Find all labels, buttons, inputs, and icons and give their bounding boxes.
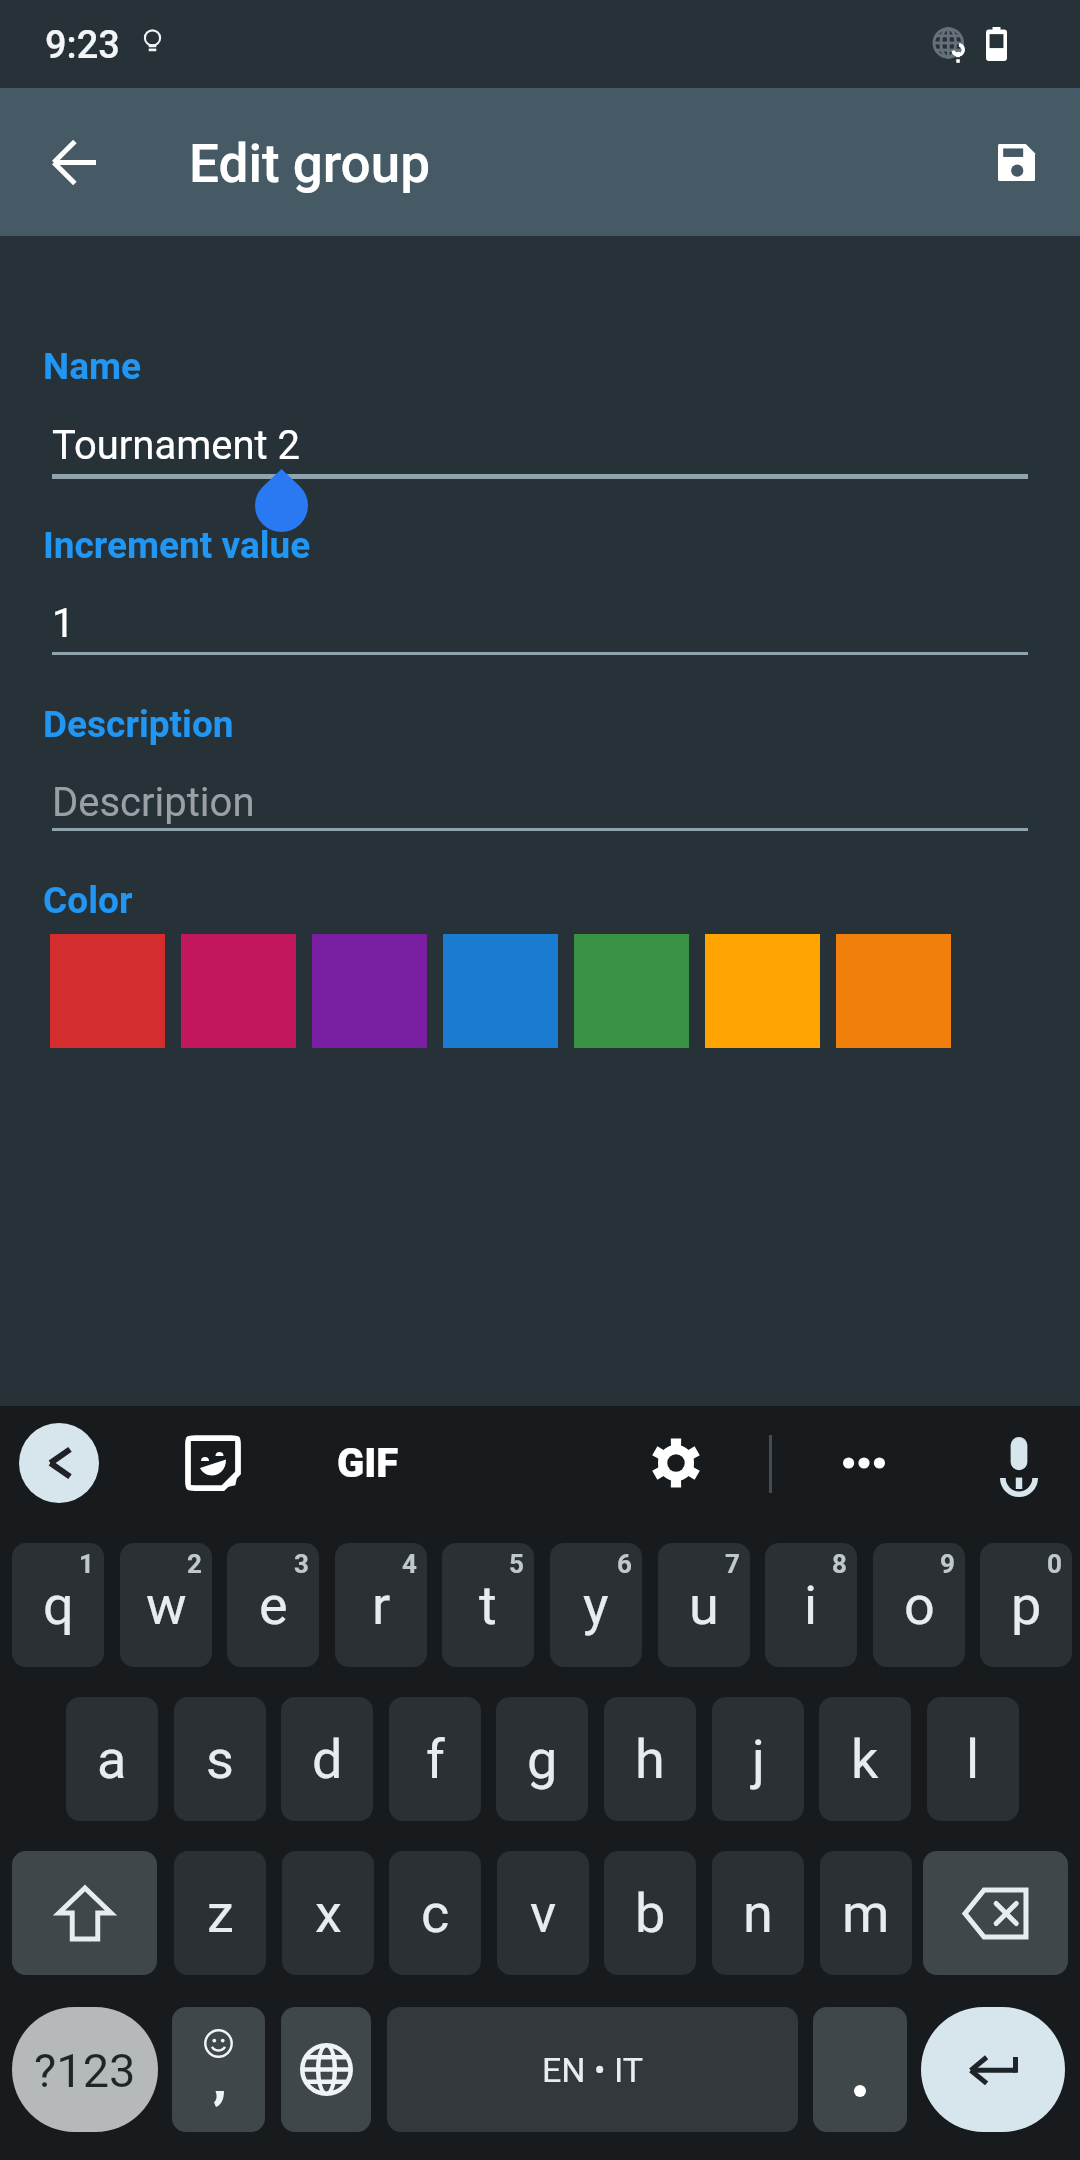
button[interactable]: EN • IT — [387, 2007, 798, 2132]
button[interactable]: Emoji and comma — [172, 2007, 265, 2132]
button[interactable]: v — [497, 1851, 589, 1975]
staticText: 8 — [832, 1549, 847, 1579]
staticText: 2 — [187, 1549, 202, 1579]
staticText: r — [372, 1574, 391, 1637]
button[interactable]: a — [66, 1697, 158, 1821]
button[interactable]: Enter — [921, 2007, 1065, 2132]
staticText: 6 — [617, 1549, 632, 1579]
staticText: y — [583, 1574, 609, 1637]
button[interactable]: Hide toolbar — [19, 1423, 99, 1503]
staticText: l — [966, 1728, 980, 1791]
staticText: j — [752, 1728, 765, 1791]
button[interactable]: q — [12, 1543, 104, 1667]
staticText: ?123 — [34, 2043, 136, 2098]
staticText: v — [530, 1882, 557, 1945]
staticText: b — [635, 1882, 666, 1945]
staticText: Tournament 2 — [52, 422, 301, 469]
button[interactable]: g — [496, 1697, 588, 1821]
staticText: 4 — [402, 1549, 417, 1579]
staticText: 0 — [1047, 1549, 1062, 1579]
staticText: Name — [43, 345, 142, 388]
button[interactable]: x — [282, 1851, 374, 1975]
button[interactable]: Switch language — [281, 2007, 371, 2132]
button[interactable]: w — [120, 1543, 212, 1667]
staticText: p — [1011, 1574, 1042, 1637]
staticText: a — [97, 1728, 127, 1791]
staticText: i — [804, 1574, 818, 1637]
staticText: t — [479, 1574, 497, 1637]
button[interactable]: l — [927, 1697, 1019, 1821]
button[interactable]: c — [389, 1851, 481, 1975]
button[interactable]: n — [712, 1851, 804, 1975]
button[interactable]: Period — [813, 2007, 907, 2132]
staticText: Edit group — [189, 133, 431, 195]
staticText: n — [743, 1882, 773, 1945]
button[interactable]: j — [712, 1697, 804, 1821]
button[interactable]: e — [227, 1543, 319, 1667]
button[interactable]: Back — [26, 88, 122, 236]
staticText: o — [904, 1574, 935, 1637]
button[interactable]: k — [819, 1697, 911, 1821]
button[interactable]: r — [335, 1543, 427, 1667]
staticText: q — [43, 1574, 74, 1637]
staticText: EN • IT — [542, 2050, 643, 2090]
button[interactable]: o — [873, 1543, 965, 1667]
staticText: Color — [43, 879, 133, 922]
button[interactable]: d — [281, 1697, 373, 1821]
staticText: 9 — [940, 1549, 955, 1579]
button[interactable]: ?123 — [12, 2007, 158, 2132]
button[interactable]: i — [765, 1543, 857, 1667]
staticText: Description — [52, 779, 255, 826]
staticText: z — [207, 1882, 234, 1945]
staticText: 1 — [52, 600, 75, 647]
staticText: d — [312, 1728, 343, 1791]
button[interactable]: GIF — [320, 1430, 416, 1496]
button[interactable]: p — [980, 1543, 1072, 1667]
button[interactable]: Backspace — [923, 1851, 1068, 1975]
button[interactable]: Stickers — [168, 1418, 258, 1508]
staticText: 1 — [79, 1549, 94, 1579]
button[interactable]: Shift — [12, 1851, 157, 1975]
button[interactable]: More options — [819, 1418, 909, 1508]
button[interactable]: Save — [968, 88, 1064, 236]
staticText: u — [689, 1574, 719, 1637]
button[interactable]: m — [820, 1851, 912, 1975]
staticText: Increment value — [43, 524, 311, 567]
staticText: s — [206, 1728, 234, 1791]
staticText: Description — [43, 703, 234, 746]
button[interactable]: Keyboard settings — [631, 1418, 721, 1508]
staticText: 3 — [294, 1549, 309, 1579]
staticText: w — [146, 1574, 187, 1637]
staticText: g — [527, 1728, 558, 1791]
staticText: GIF — [337, 1440, 399, 1487]
staticText: e — [259, 1574, 288, 1637]
button[interactable]: y — [550, 1543, 642, 1667]
staticText: m — [842, 1882, 890, 1945]
button[interactable]: s — [174, 1697, 266, 1821]
button[interactable]: u — [658, 1543, 750, 1667]
staticText: 5 — [509, 1549, 524, 1579]
button[interactable]: z — [174, 1851, 266, 1975]
staticText: k — [851, 1728, 879, 1791]
staticText: x — [315, 1882, 342, 1945]
button[interactable]: t — [442, 1543, 534, 1667]
staticText: 9:23 — [45, 23, 120, 68]
button[interactable]: f — [389, 1697, 481, 1821]
staticText: 7 — [725, 1549, 740, 1579]
staticText: c — [421, 1882, 450, 1945]
button[interactable]: Voice input — [974, 1418, 1064, 1508]
button[interactable]: h — [604, 1697, 696, 1821]
button[interactable]: b — [604, 1851, 696, 1975]
staticText: f — [426, 1728, 445, 1791]
staticText: h — [635, 1728, 665, 1791]
